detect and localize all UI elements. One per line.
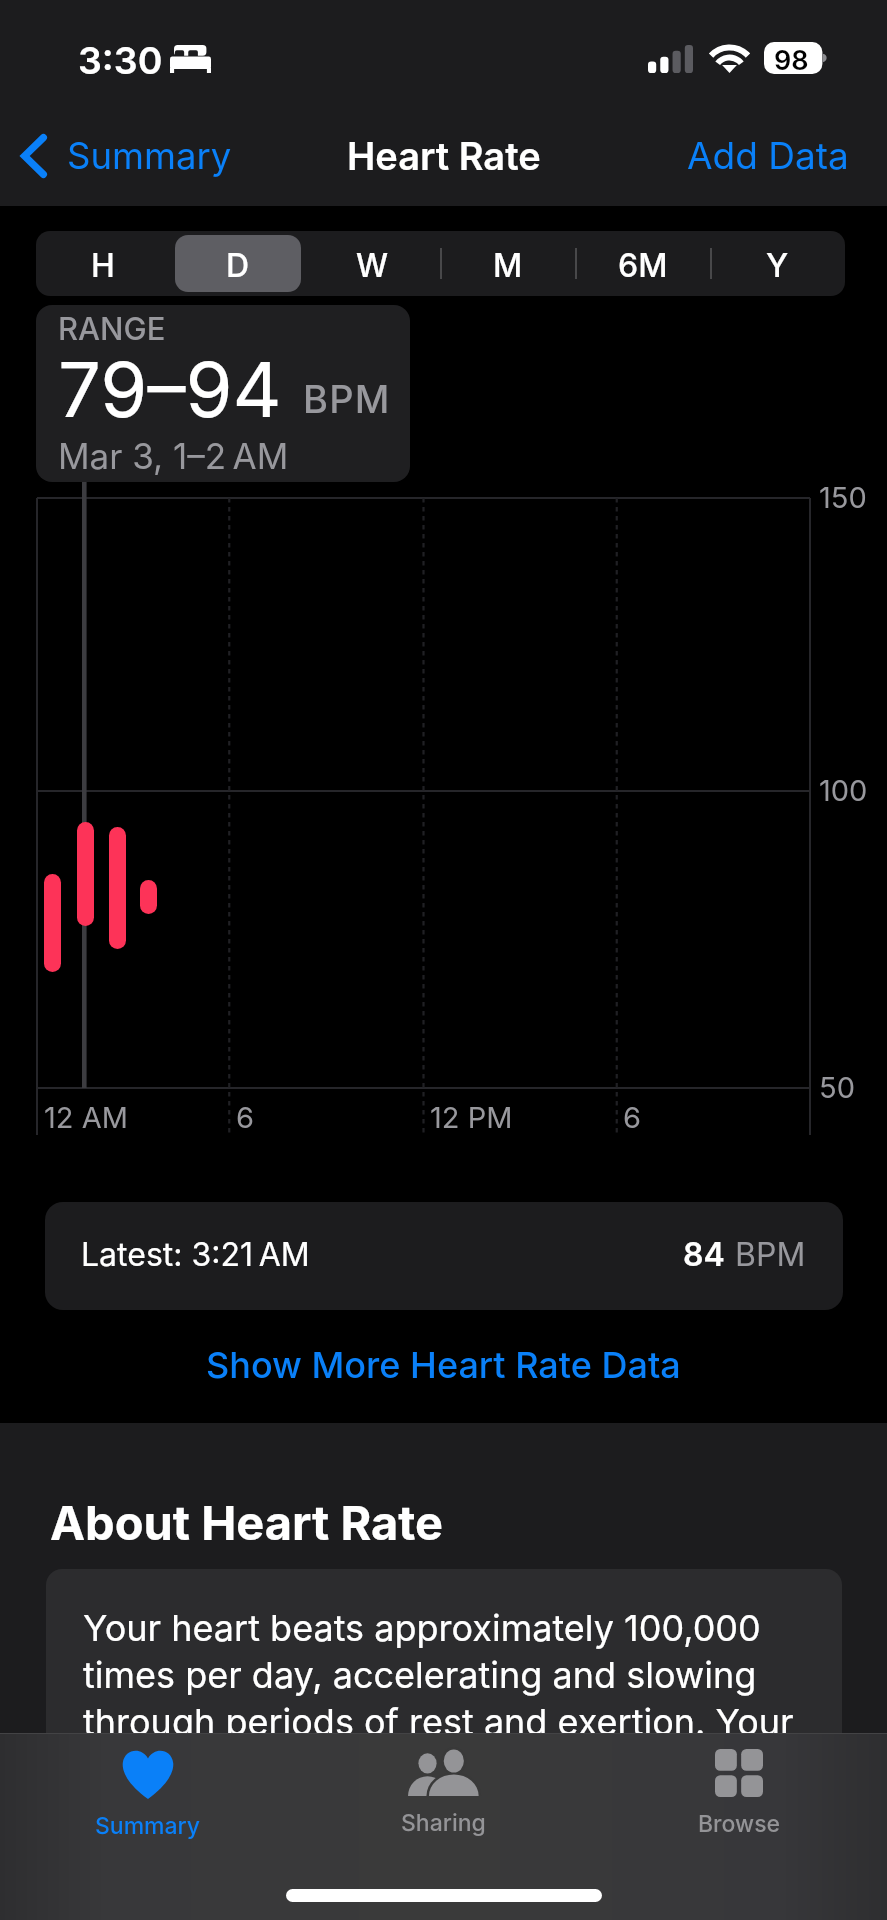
staticText: Mar 3, 1–2 AM (58, 435, 289, 477)
button[interactable]: Summary (0, 1733, 295, 1853)
button[interactable]: H (36, 231, 170, 296)
button[interactable]: Add Data (671, 129, 887, 184)
staticText: Your heart beats approximately 100,000 t… (83, 1606, 825, 1744)
button[interactable]: W (305, 231, 440, 296)
staticText: H (91, 246, 115, 285)
button[interactable]: Browse (591, 1733, 887, 1853)
staticText: BPM (735, 1235, 806, 1274)
staticText: Browse (698, 1810, 781, 1838)
staticText: 12 AM (44, 1100, 128, 1135)
staticText: 3:30 (78, 38, 163, 83)
staticText: RANGE (58, 310, 166, 348)
button[interactable]: Y (710, 231, 845, 296)
staticText: Latest: 3:21 AM (81, 1235, 310, 1274)
staticText: 150 (819, 480, 867, 515)
button[interactable]: M (440, 231, 575, 296)
staticText: Summary (95, 1812, 201, 1840)
staticText: M (493, 246, 523, 285)
staticText: Heart Rate (347, 133, 541, 179)
button[interactable]: Sharing (295, 1733, 591, 1853)
staticText: D (226, 246, 250, 285)
staticText: Y (766, 246, 789, 285)
staticText: Summary (67, 134, 232, 178)
staticText: 12 PM (430, 1100, 513, 1135)
button[interactable]: Latest: 3:21 AM (45, 1202, 843, 1310)
staticText: 100 (819, 773, 868, 808)
staticText: 98 (774, 44, 809, 76)
button[interactable]: Summary (0, 130, 244, 184)
button[interactable]: 6M (575, 231, 710, 296)
staticText: W (356, 246, 389, 285)
staticText: BPM (303, 376, 391, 422)
other: Sharing (408, 1749, 479, 1796)
staticText: About Heart Rate (50, 1494, 444, 1551)
staticText: 79–94 (58, 343, 282, 435)
staticText: Show More Heart Rate Data (206, 1343, 681, 1387)
staticText: 50 (819, 1070, 855, 1105)
staticText: Sharing (401, 1809, 486, 1837)
staticText: 6M (618, 246, 668, 285)
staticText: 6 (236, 1100, 254, 1135)
staticText: 84 (683, 1235, 725, 1274)
other: Browse (715, 1749, 763, 1797)
other: Summary (122, 1749, 174, 1799)
button[interactable]: D (170, 231, 305, 296)
staticText: 6 (623, 1100, 641, 1135)
staticText: Add Data (687, 133, 849, 178)
button[interactable]: Show More Heart Rate Data (182, 1331, 705, 1399)
